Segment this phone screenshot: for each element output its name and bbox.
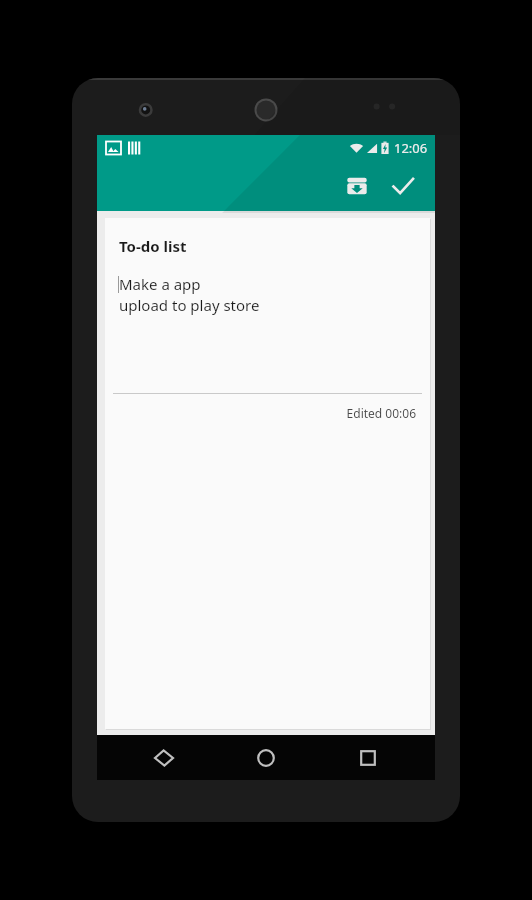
staticText: To-do list xyxy=(119,236,187,256)
staticText: Make a app upload to play store xyxy=(119,274,260,316)
staticText: 12:06 xyxy=(394,139,428,157)
button[interactable]: Done xyxy=(381,164,425,208)
button[interactable]: Archive note xyxy=(335,164,379,208)
staticText: Edited 00:06 xyxy=(105,405,416,421)
button[interactable]: Back xyxy=(138,735,190,780)
button[interactable]: Home xyxy=(240,735,292,780)
button[interactable]: To-do list xyxy=(105,218,430,729)
button[interactable]: Recent apps xyxy=(342,735,394,780)
